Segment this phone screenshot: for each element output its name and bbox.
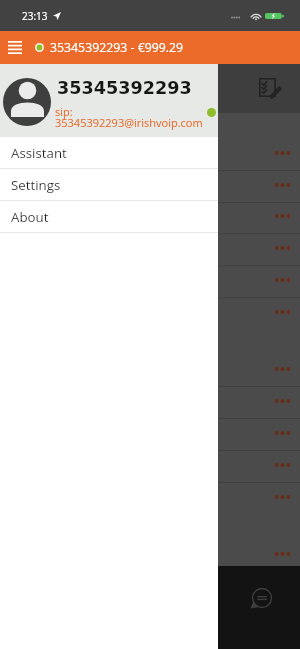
button[interactable] <box>0 170 300 202</box>
button[interactable]: Settings <box>0 169 218 201</box>
staticText: Settings <box>11 176 61 194</box>
button[interactable]: Open navigation <box>0 31 30 64</box>
staticText: Assistant <box>11 144 67 162</box>
button[interactable] <box>0 202 300 233</box>
button[interactable] <box>0 113 300 170</box>
button[interactable] <box>0 482 300 514</box>
button[interactable]: About <box>0 201 218 233</box>
button[interactable] <box>0 514 300 566</box>
button[interactable]: Edit <box>250 67 290 107</box>
button[interactable] <box>0 450 300 482</box>
staticText: About <box>11 208 49 226</box>
button[interactable] <box>0 265 300 297</box>
button[interactable] <box>0 297 300 386</box>
staticText: 35345392293 - €999.29 <box>50 39 184 56</box>
button[interactable]: Assistant <box>0 137 218 169</box>
staticText: sip: 35345392293@irishvoip.com <box>55 104 203 130</box>
button[interactable] <box>0 386 300 418</box>
button[interactable] <box>0 418 300 450</box>
button[interactable] <box>0 233 300 265</box>
staticText: 35345392293 <box>57 78 192 98</box>
button[interactable]: New message <box>243 579 281 617</box>
staticText: 23:13 <box>22 9 48 23</box>
